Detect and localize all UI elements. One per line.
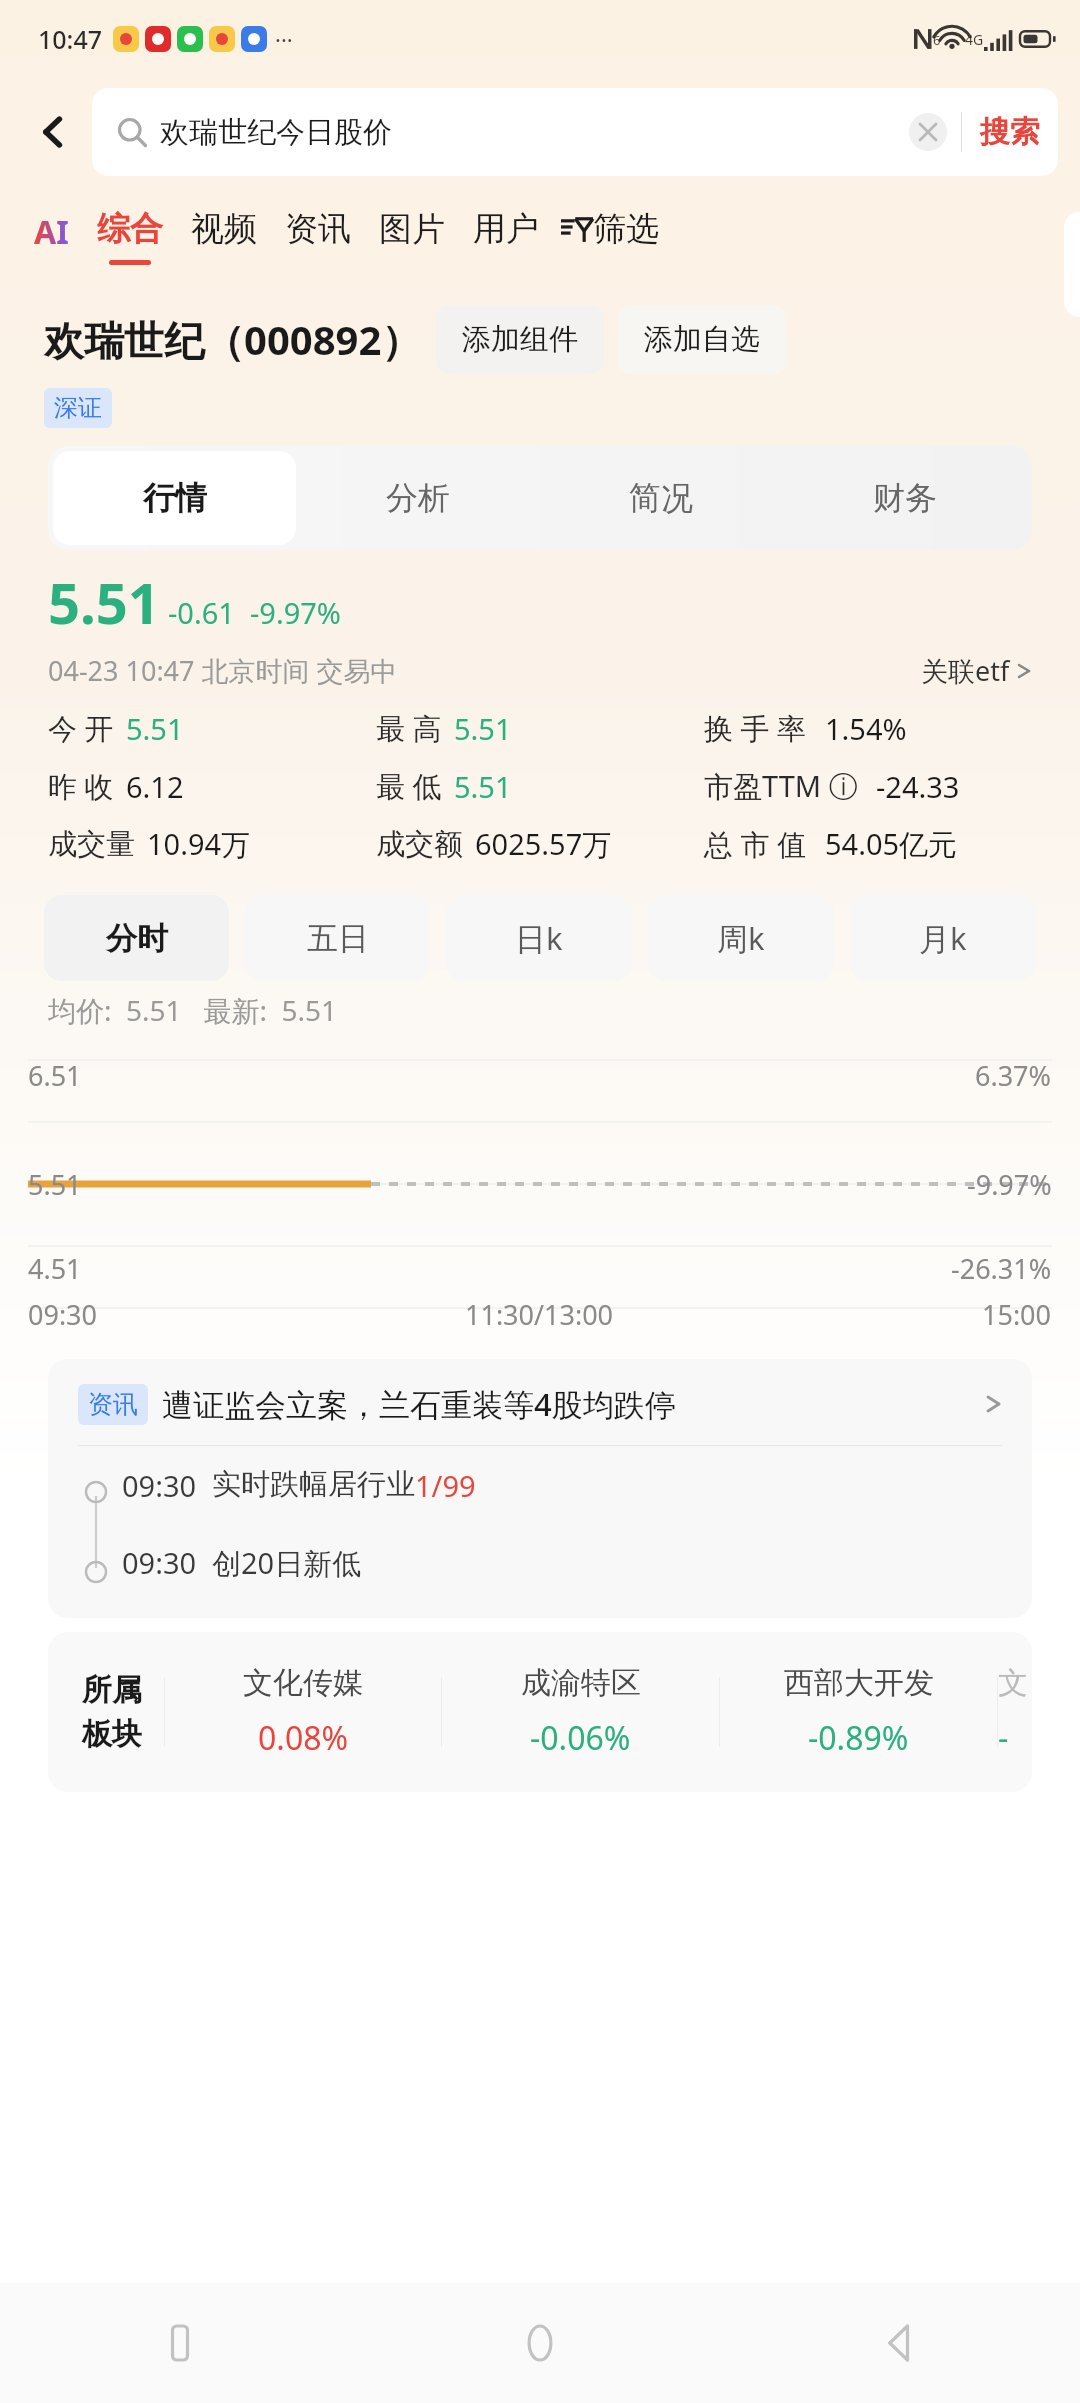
staticText: 西部大开发 xyxy=(784,1664,934,1702)
staticText: 添加自选 xyxy=(644,321,760,358)
staticText: 5.51 xyxy=(454,767,512,806)
staticText: 深证 xyxy=(54,393,102,423)
staticText: 4G xyxy=(965,30,984,49)
button[interactable]: 成渝特区 xyxy=(442,1664,719,1760)
button[interactable]: Back xyxy=(720,2283,1080,2403)
staticText: 6.12 xyxy=(126,767,184,806)
button[interactable]: 筛选 xyxy=(559,208,659,250)
button[interactable]: 文化传媒 xyxy=(165,1664,441,1760)
button[interactable]: 简况 xyxy=(539,451,783,545)
staticText: 文 xyxy=(998,1664,1028,1702)
button[interactable]: 资讯 xyxy=(78,1383,1002,1425)
button[interactable]: 搜索 xyxy=(980,113,1040,151)
staticText: -0.06% xyxy=(530,1716,631,1760)
staticText: 6025.57万 xyxy=(475,824,612,864)
button[interactable]: 添加自选 xyxy=(618,305,786,374)
staticText: 遭证监会立案，兰石重装等4股均跌停 xyxy=(162,1383,676,1425)
staticText: 筛选 xyxy=(593,208,659,250)
staticText: 分时 xyxy=(106,919,168,958)
staticText: 文化传媒 xyxy=(243,1664,363,1702)
staticText: 欢瑞世纪（000892） xyxy=(44,312,422,367)
staticText: -24.33 xyxy=(876,767,960,806)
button[interactable]: 关联etf xyxy=(921,652,1032,689)
button[interactable]: 财务 xyxy=(783,451,1027,545)
staticText: 10.94万 xyxy=(147,824,251,864)
staticText: 市盈TTM ⓘ xyxy=(704,766,858,806)
staticText: 行情 xyxy=(143,478,207,518)
staticText: 11:30/13:00 xyxy=(465,1296,614,1333)
staticText: 创20日新低 xyxy=(212,1543,362,1583)
button[interactable]: 用户 xyxy=(473,208,539,250)
button[interactable]: 综合 xyxy=(97,208,163,250)
staticText: 最 高 xyxy=(376,708,442,748)
staticText: 资讯 xyxy=(285,208,351,250)
staticText: 6 xyxy=(933,31,941,49)
staticText: 5.51 xyxy=(28,1166,82,1203)
staticText: 搜索 xyxy=(980,113,1040,151)
staticText: ··· xyxy=(275,24,293,54)
button[interactable]: 月k xyxy=(850,895,1036,981)
staticText: - xyxy=(998,1716,1009,1760)
staticText: 1/99 xyxy=(415,1466,476,1505)
staticText: 资讯 xyxy=(88,1389,138,1420)
button[interactable]: 分时 xyxy=(44,895,229,981)
button[interactable]: Recents xyxy=(0,2283,360,2403)
staticText: AI xyxy=(34,210,69,254)
staticText: 换 手 率 xyxy=(704,708,807,748)
button[interactable]: AI xyxy=(34,210,69,254)
staticText: 日k xyxy=(515,917,563,959)
staticText: 昨 收 xyxy=(48,766,114,806)
button[interactable]: 09:30 xyxy=(122,1543,362,1583)
staticText: 15:00 xyxy=(982,1296,1052,1333)
button[interactable]: 西部大开发 xyxy=(720,1664,997,1760)
button[interactable]: 图片 xyxy=(379,208,445,250)
staticText: 财务 xyxy=(873,478,937,518)
button[interactable]: 资讯 xyxy=(285,208,351,250)
staticText: 综合 xyxy=(97,208,163,250)
button[interactable]: Back xyxy=(16,94,92,170)
button[interactable]: 欢瑞世纪今日股价 xyxy=(92,88,1058,176)
button[interactable]: 行情 xyxy=(53,451,296,545)
staticText: 月k xyxy=(919,917,967,959)
staticText: 板块 xyxy=(82,1715,142,1753)
staticText: 10:47 xyxy=(38,22,103,56)
staticText: -9.97% xyxy=(967,1166,1052,1203)
staticText: 成交额 xyxy=(376,826,463,863)
staticText: 今 开 xyxy=(48,708,114,748)
staticText: 5.51 xyxy=(48,564,160,640)
staticText: 6.37% xyxy=(975,1057,1052,1094)
staticText: 视频 xyxy=(191,208,257,250)
staticText: -0.61 -9.97% xyxy=(168,593,341,632)
staticText: 简况 xyxy=(629,478,693,518)
button[interactable]: Home xyxy=(360,2283,720,2403)
staticText: 09:30 xyxy=(28,1296,98,1333)
button[interactable]: 视频 xyxy=(191,208,257,250)
staticText: 图片 xyxy=(379,208,445,250)
button[interactable]: Clear xyxy=(909,113,947,151)
button[interactable]: 09:30 xyxy=(122,1466,476,1505)
staticText: 实时跌幅居行业 xyxy=(212,1466,415,1503)
button[interactable]: 日k xyxy=(446,895,632,981)
staticText: 4.51 xyxy=(28,1250,82,1287)
button[interactable]: 分析 xyxy=(296,451,539,545)
staticText: 添加组件 xyxy=(462,321,578,358)
staticText: 周k xyxy=(717,917,765,959)
staticText: 1.54% xyxy=(825,709,907,748)
staticText: 0.08% xyxy=(258,1716,349,1760)
button[interactable]: 添加组件 xyxy=(436,305,604,374)
staticText: 总 市 值 xyxy=(704,824,807,864)
staticText: 5.51 xyxy=(454,709,512,748)
button[interactable]: 五日 xyxy=(245,895,430,981)
staticText: 5.51 xyxy=(126,709,184,748)
staticText: 最 低 xyxy=(376,766,442,806)
button[interactable]: 周k xyxy=(648,895,834,981)
staticText: -0.89% xyxy=(808,1716,909,1760)
staticText: 五日 xyxy=(307,919,369,958)
staticText: 成交量 xyxy=(48,826,135,863)
staticText: 54.05亿元 xyxy=(825,824,958,864)
staticText: 09:30 xyxy=(122,1466,212,1505)
staticText: 欢瑞世纪今日股价 xyxy=(160,114,392,151)
staticText: 均价: 5.51 最新: 5.51 xyxy=(48,991,338,1029)
staticText: 关联etf xyxy=(921,652,1010,689)
staticText: 用户 xyxy=(473,208,539,250)
